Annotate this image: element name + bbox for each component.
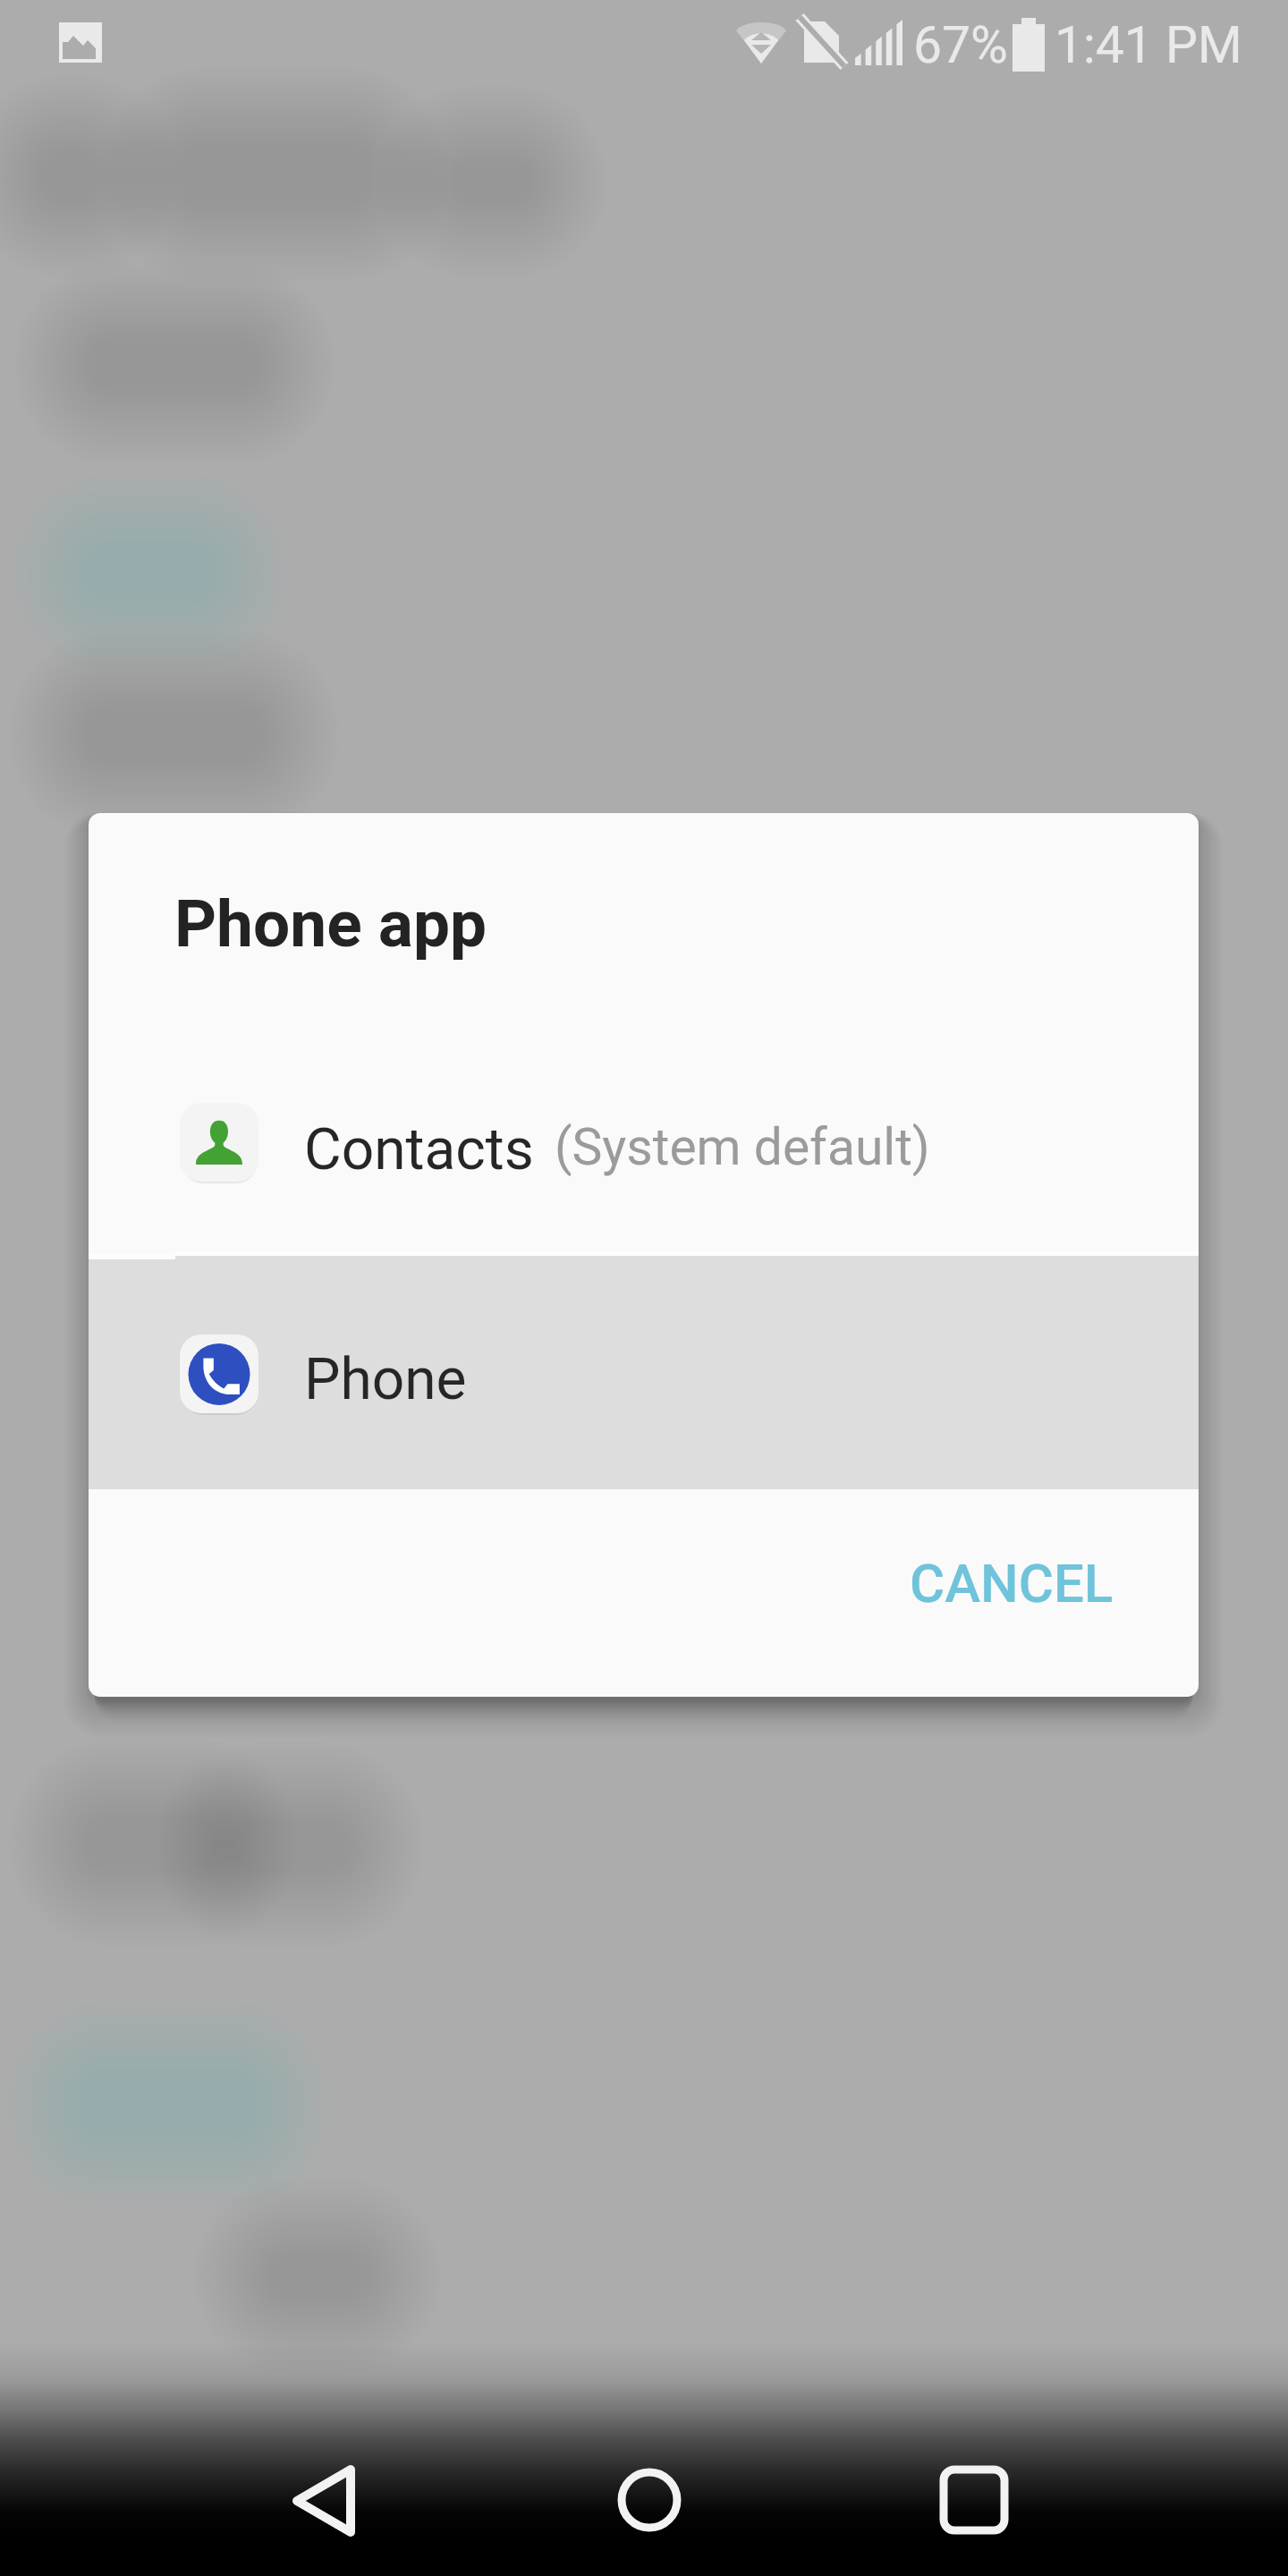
staticText: 1:41 PM xyxy=(1055,15,1242,75)
staticText: Contacts xyxy=(304,1116,534,1183)
staticText: Phone xyxy=(304,1346,467,1413)
button[interactable]: Recents xyxy=(902,2428,1046,2572)
staticText: 67% xyxy=(913,15,1008,75)
button[interactable]: CANCEL xyxy=(876,1529,1148,1638)
staticText: CANCEL xyxy=(910,1552,1114,1614)
button[interactable]: Home xyxy=(578,2428,721,2572)
staticText: Phone app xyxy=(174,885,487,962)
button[interactable]: Dismiss dialog xyxy=(0,0,1288,2576)
staticText: (System default) xyxy=(555,1117,930,1177)
button[interactable]: Contacts xyxy=(89,1055,1199,1259)
button[interactable]: Phone xyxy=(89,1259,1199,1489)
button[interactable]: Back xyxy=(253,2429,396,2572)
